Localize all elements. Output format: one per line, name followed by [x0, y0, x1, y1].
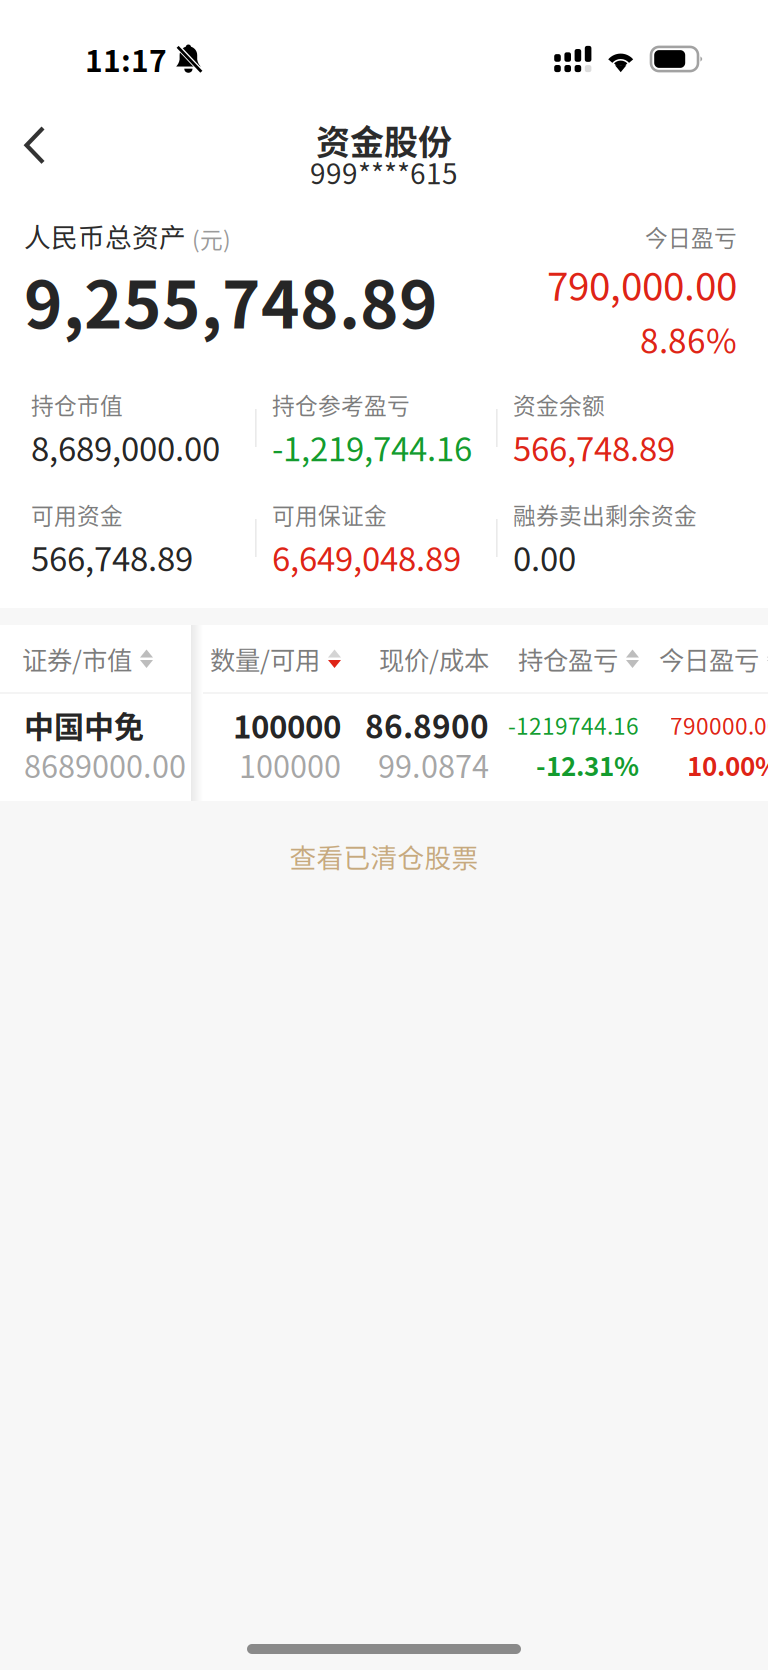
staticText: 999****615 [310, 152, 458, 192]
staticText: 融券卖出剩余资金 [513, 498, 697, 531]
staticText: 566,748.89 [513, 423, 675, 471]
staticText: 790,000.00 [547, 256, 737, 312]
staticText: 数量/可用 [210, 640, 320, 677]
staticText: 资金股份 [316, 115, 452, 165]
staticText: 证券/市值 [22, 640, 132, 677]
staticText: (元) [192, 222, 231, 255]
staticText: 10.00% [687, 746, 768, 783]
staticText: 资金余额 [513, 388, 605, 421]
staticText: 11:17 [85, 37, 167, 81]
staticText: 可用保证金 [272, 498, 387, 531]
staticText: 查看已清仓股票 [289, 837, 478, 875]
staticText: 100000 [233, 702, 341, 747]
staticText: 人民币总资产 [24, 216, 186, 255]
staticText: 今日盈亏 [645, 220, 737, 253]
button[interactable]: 查看已清仓股票 [0, 801, 768, 911]
staticText: 持仓市值 [31, 388, 123, 421]
staticText: 8,689,000.00 [31, 423, 220, 471]
button[interactable]: 返回 [0, 122, 76, 185]
staticText: 99.0874 [378, 742, 489, 787]
staticText: 8689000.00 [24, 742, 186, 787]
staticText: 86.8900 [365, 702, 489, 748]
staticText: 100000 [239, 742, 341, 787]
staticText: 790000.00 [670, 708, 768, 741]
staticText: 持仓参考盈亏 [272, 388, 410, 421]
staticText: -12.31% [536, 746, 639, 783]
staticText: 今日盈亏 [659, 640, 759, 677]
staticText: 9,255,748.89 [24, 253, 438, 347]
staticText: 6,649,048.89 [272, 533, 461, 581]
staticText: 持仓盈亏 [518, 640, 618, 677]
staticText: 可用资金 [31, 498, 123, 531]
staticText: 中国中免 [24, 703, 144, 746]
staticText: 现价/成本 [379, 640, 489, 677]
staticText: 8.86% [640, 315, 737, 363]
staticText: 566,748.89 [31, 533, 193, 581]
staticText: -1219744.16 [508, 708, 639, 741]
staticText: 0.00 [513, 533, 576, 581]
staticText: -1,219,744.16 [272, 423, 472, 471]
